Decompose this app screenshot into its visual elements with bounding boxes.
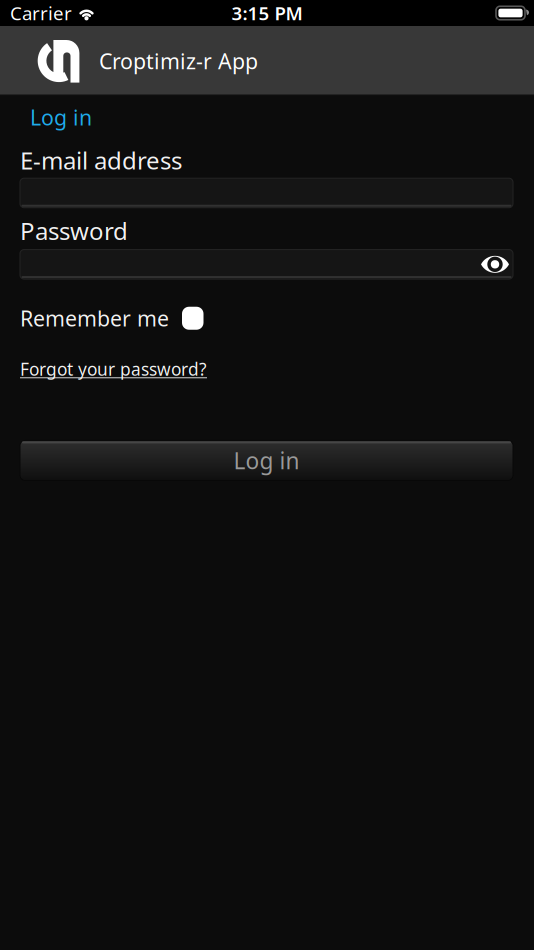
staticText: Forgot your password? — [20, 357, 207, 380]
button[interactable]: Forgot your password? — [20, 357, 207, 380]
staticText: Carrier — [10, 1, 72, 25]
button[interactable]: Log in — [20, 440, 513, 480]
button[interactable]: Log in — [30, 103, 92, 131]
staticText: Remember me — [20, 304, 169, 332]
button[interactable]: Remember me — [20, 304, 203, 332]
button[interactable]: Show password — [481, 255, 509, 273]
staticText: Password — [20, 215, 128, 247]
staticText: E-mail address — [20, 144, 182, 176]
staticText: Croptimiz-r App — [99, 47, 258, 75]
staticText: Log in — [233, 445, 299, 475]
staticText: 3:15 PM — [231, 1, 302, 25]
staticText: Log in — [30, 103, 92, 131]
